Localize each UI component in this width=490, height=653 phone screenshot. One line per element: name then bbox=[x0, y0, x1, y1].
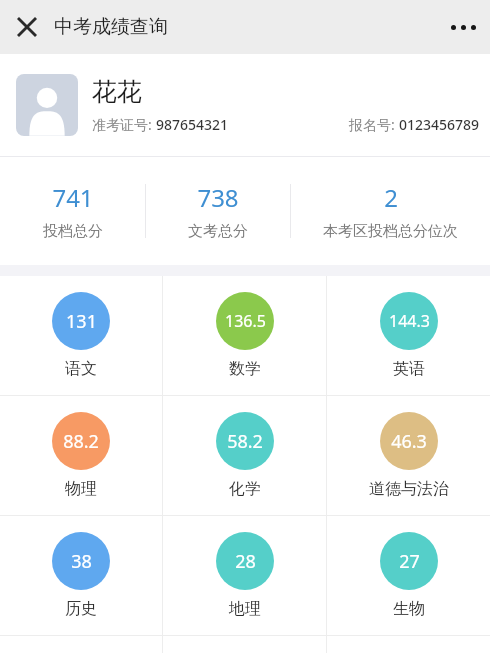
staticText: 物理 bbox=[65, 479, 97, 499]
staticText: 28 bbox=[235, 549, 256, 574]
button[interactable]: 38 bbox=[0, 516, 162, 635]
staticText: 数学 bbox=[229, 359, 261, 379]
staticText: 88.2 bbox=[63, 429, 99, 454]
staticText: 27 bbox=[399, 549, 420, 574]
staticText: 987654321 bbox=[156, 115, 229, 134]
staticText: 报名号: bbox=[349, 115, 399, 134]
staticText: 语文 bbox=[65, 359, 97, 379]
staticText: 144.3 bbox=[389, 310, 430, 332]
staticText: 道德与法治 bbox=[369, 479, 449, 499]
staticText: 地理 bbox=[229, 599, 261, 619]
button[interactable]: 46.3 bbox=[327, 396, 490, 515]
staticText: 738 bbox=[197, 181, 239, 214]
button[interactable]: 58.2 bbox=[163, 396, 326, 515]
staticText: 文考总分 bbox=[188, 222, 248, 241]
button[interactable]: 144.3 bbox=[327, 276, 490, 395]
button[interactable]: 88.2 bbox=[0, 396, 162, 515]
staticText: 2 bbox=[384, 181, 398, 214]
staticText: 0123456789 bbox=[399, 115, 480, 134]
button[interactable]: 136.5 bbox=[163, 276, 326, 395]
staticText: 本考区投档总分位次 bbox=[323, 222, 458, 241]
staticText: 英语 bbox=[393, 359, 425, 379]
button[interactable]: 28 bbox=[163, 516, 326, 635]
staticText: 生物 bbox=[393, 599, 425, 619]
button[interactable]: 741 bbox=[0, 157, 145, 265]
staticText: 131 bbox=[66, 309, 97, 334]
staticText: 46.3 bbox=[391, 429, 427, 454]
button[interactable]: More options bbox=[440, 4, 486, 50]
button[interactable]: 花花 bbox=[0, 54, 490, 156]
button[interactable]: 2 bbox=[291, 157, 490, 265]
staticText: 投档总分 bbox=[43, 222, 103, 241]
staticText: 花花 bbox=[92, 76, 142, 107]
staticText: 历史 bbox=[65, 599, 97, 619]
button[interactable]: 738 bbox=[146, 157, 290, 265]
staticText: 58.2 bbox=[227, 429, 263, 454]
staticText: 741 bbox=[52, 181, 94, 214]
staticText: 中考成绩查询 bbox=[54, 15, 168, 39]
staticText: 38 bbox=[71, 549, 92, 574]
staticText: 136.5 bbox=[225, 310, 266, 332]
button[interactable]: 131 bbox=[0, 276, 162, 395]
button[interactable]: 27 bbox=[327, 516, 490, 635]
staticText: 化学 bbox=[229, 479, 261, 499]
staticText: 准考证号: bbox=[92, 115, 156, 134]
button[interactable]: Close bbox=[6, 6, 48, 48]
